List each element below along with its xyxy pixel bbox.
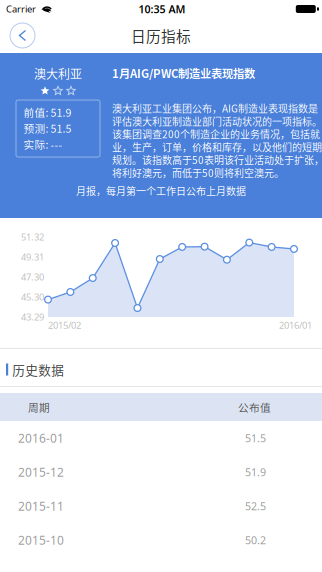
staticText: 澳大利亚 [34, 65, 82, 82]
staticText: 实际: --- [23, 136, 62, 152]
staticText: 47.30 [21, 271, 44, 283]
staticText: 50.2 [245, 533, 266, 547]
staticText: 前值: 51.9 [23, 104, 71, 120]
staticText: 预测: 51.5 [23, 120, 71, 136]
staticText: 周期 [28, 399, 50, 415]
staticText: 49.31 [21, 251, 44, 263]
staticText: 1月AIG/PWC制造业表现指数 [112, 65, 255, 81]
staticText: Carrier [6, 3, 36, 15]
staticText: 2015-12 [18, 464, 64, 480]
staticText: 公布值 [238, 399, 271, 415]
staticText: 51.5 [245, 431, 266, 445]
button[interactable]: Back [10, 23, 35, 48]
staticText: 2016-01 [18, 430, 64, 446]
staticText: 日历指标 [131, 25, 191, 46]
staticText: 历史数据 [12, 360, 64, 379]
staticText: 2015-11 [18, 498, 64, 514]
staticText: 2016/01 [279, 319, 312, 331]
staticText: 43.29 [21, 311, 44, 323]
staticText: 10:35 AM [138, 2, 185, 16]
staticText: 51.9 [245, 465, 266, 479]
staticText: 澳大利亚工业集团公布，AIG制造业表现指数是评估澳大利亚制造业部门活动状况的一项… [112, 101, 322, 180]
staticText: 52.5 [245, 499, 266, 513]
staticText: 51.32 [21, 231, 44, 243]
staticText: 2015-10 [18, 532, 64, 548]
staticText: 2015/02 [48, 319, 81, 331]
staticText: 45.30 [21, 291, 44, 303]
staticText: 月报，每月第一个工作日公布上月数据 [76, 183, 246, 198]
